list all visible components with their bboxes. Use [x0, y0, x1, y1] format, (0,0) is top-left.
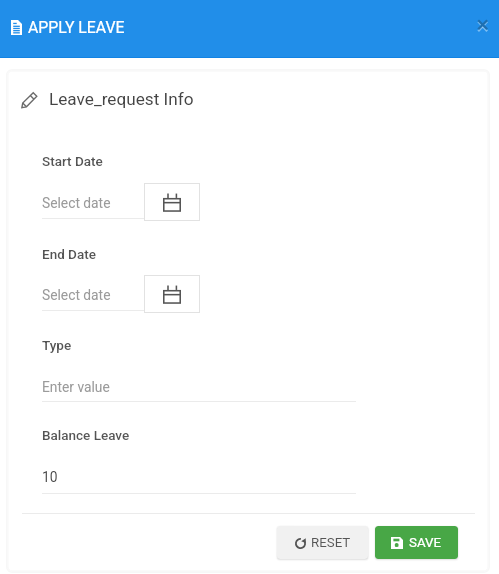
staticText: SAVE: [409, 535, 442, 551]
staticText: Select date: [42, 195, 111, 211]
staticText: Select date: [42, 287, 111, 303]
button[interactable]: Pick end date: [144, 275, 200, 313]
button[interactable]: Close: [469, 11, 496, 38]
button[interactable]: 10: [42, 469, 356, 494]
button[interactable]: RESET: [277, 526, 368, 559]
staticText: RESET: [311, 535, 351, 551]
staticText: APPLY LEAVE: [28, 18, 125, 37]
button[interactable]: SAVE: [375, 526, 458, 559]
staticText: End Date: [42, 246, 96, 262]
button[interactable]: Pick start date: [144, 183, 200, 221]
staticText: 10: [42, 469, 58, 485]
button[interactable]: Enter value: [42, 379, 356, 402]
staticText: Enter value: [42, 379, 110, 395]
staticText: Balance Leave: [42, 427, 130, 443]
staticText: Start Date: [42, 153, 103, 169]
button[interactable]: Select date: [42, 287, 144, 311]
staticText: Leave_request Info: [49, 89, 194, 109]
staticText: Type: [42, 337, 72, 353]
button[interactable]: Select date: [42, 195, 144, 219]
